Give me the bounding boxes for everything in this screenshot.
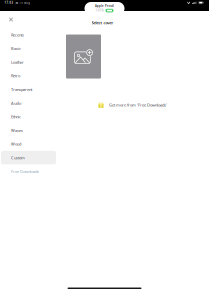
staticText: Select cover	[91, 20, 113, 25]
staticText: Transparent	[11, 87, 32, 92]
staticText: Wood	[11, 141, 21, 147]
staticText: Leather	[11, 59, 24, 65]
staticText: 17:03	[4, 1, 13, 4]
button[interactable]: Close	[5, 14, 16, 25]
button[interactable]: Get more from ‘Free Downloads’	[57, 102, 167, 108]
button[interactable]: Free Downloads	[1, 164, 56, 178]
button[interactable]: Audio	[1, 96, 56, 110]
button[interactable]: Wood	[1, 137, 56, 151]
staticText: Basic	[11, 46, 21, 51]
button[interactable]: Leather	[1, 55, 56, 69]
staticText: Waves	[11, 128, 23, 133]
staticText: Audio	[11, 100, 21, 106]
staticText: Free Downloads	[11, 169, 39, 174]
button[interactable]: Transparent	[1, 83, 56, 96]
button[interactable]: Basic	[1, 42, 56, 55]
staticText: Sat 15 Aug	[15, 1, 30, 4]
button[interactable]: Retro	[1, 69, 56, 83]
staticText: Get more from ‘Free Downloads’	[109, 102, 167, 108]
button[interactable]: Custom	[1, 151, 56, 165]
button[interactable]: Waves	[1, 124, 56, 137]
button[interactable]: Ethnic	[1, 110, 56, 124]
staticText: 100%	[95, 9, 103, 12]
staticText: Apple Pencil	[95, 4, 114, 8]
staticText: Retro	[11, 73, 20, 78]
staticText: Custom	[11, 155, 25, 160]
staticText: Ethnic	[11, 114, 21, 119]
staticText: Recents	[11, 32, 24, 37]
button[interactable]: Recents	[1, 28, 56, 42]
